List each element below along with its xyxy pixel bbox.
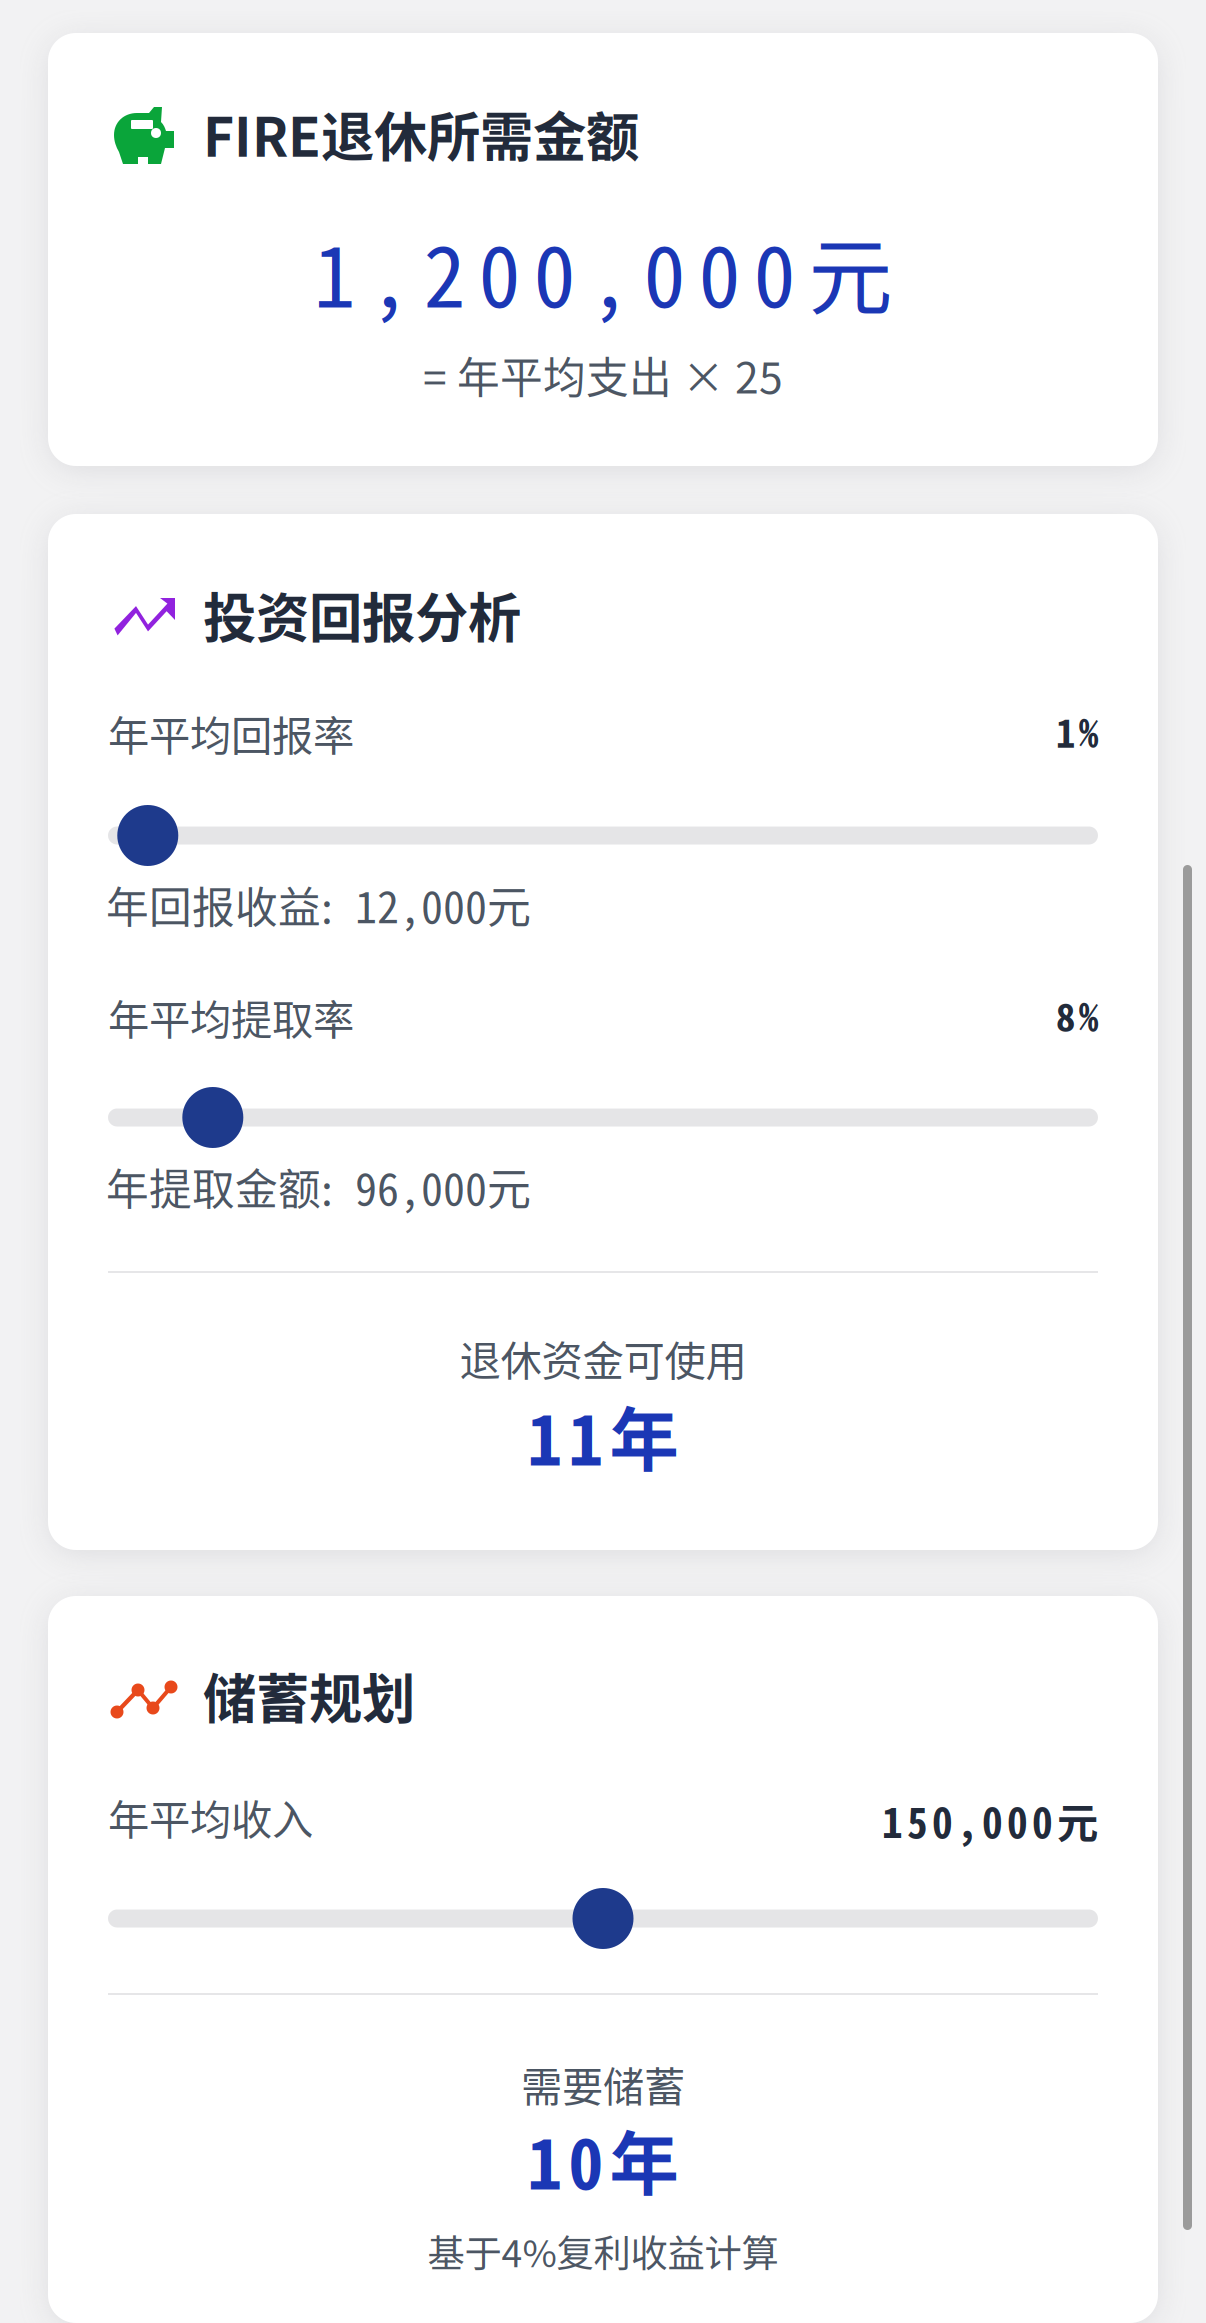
staticText: 8% xyxy=(1056,987,1098,1043)
staticText: 年回报收益: 12,000元 xyxy=(106,873,531,935)
staticText: 投资回报分析 xyxy=(203,576,521,653)
staticText: FIRE退休所需金额 xyxy=(203,95,639,172)
staticText: 1,200,000元 xyxy=(313,210,892,332)
staticText: 年提取金额: 96,000元 xyxy=(106,1155,531,1217)
staticText: 需要储蓄 xyxy=(521,2054,685,2114)
staticText: 11年 xyxy=(527,1385,678,1485)
staticText: 10年 xyxy=(527,2109,678,2209)
staticText: 年平均提取率 xyxy=(108,987,354,1047)
staticText: 150,000元 xyxy=(882,1790,1098,1850)
staticText: = 年平均支出 × 25 xyxy=(423,344,783,406)
staticText: 年平均收入 xyxy=(108,1787,313,1847)
staticText: 退休资金可使用 xyxy=(459,1328,746,1388)
staticText: 年平均回报率 xyxy=(108,703,354,763)
staticText: 1% xyxy=(1056,703,1098,759)
staticText: 储蓄规划 xyxy=(203,1657,415,1734)
staticText: 基于4%复利收益计算 xyxy=(427,2224,778,2278)
